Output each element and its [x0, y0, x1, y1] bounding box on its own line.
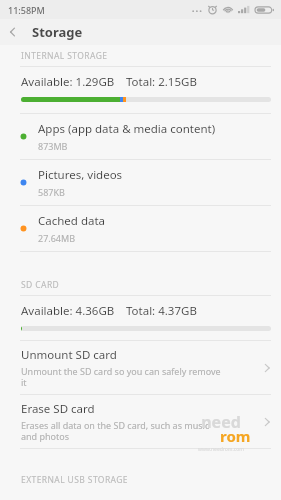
button[interactable]: Erase SD card — [0, 395, 281, 448]
button[interactable]: Pictures, videos — [0, 160, 281, 205]
staticText: Apps (app data & media content) — [38, 121, 216, 137]
staticText: Unmount SD card — [21, 347, 117, 363]
button[interactable]: Unmount SD card — [0, 341, 281, 394]
button[interactable]: Apps (app data & media content) — [0, 114, 281, 159]
staticText: www.needrom.com — [198, 446, 244, 453]
staticText: SD CARD — [21, 279, 60, 291]
staticText: Total: 2.15GB — [126, 74, 197, 90]
staticText: Available: 1.29GB — [21, 74, 115, 90]
staticText: Total: 4.37GB — [126, 303, 197, 319]
staticText: 11:58PM — [8, 4, 45, 16]
staticText: 873MB — [38, 140, 68, 152]
staticText: Erase SD card — [21, 401, 95, 417]
staticText: 27.64MB — [38, 232, 76, 244]
staticText: need — [201, 411, 241, 433]
button[interactable]: Cached data — [0, 206, 281, 251]
staticText: Cached data — [38, 213, 106, 229]
button[interactable]: Back — [0, 19, 26, 45]
staticText: Pictures, videos — [38, 167, 123, 183]
staticText: INTERNAL STORAGE — [21, 50, 108, 62]
staticText: Available: 4.36GB — [21, 303, 115, 319]
staticText: rom — [220, 426, 251, 446]
staticText: Storage — [32, 23, 83, 41]
staticText: 587KB — [38, 186, 65, 198]
staticText: EXTERNAL USB STORAGE — [21, 474, 128, 486]
staticText: Erases all data on the SD card, such as … — [21, 419, 210, 443]
staticText: Unmount the SD card so you can safely re… — [21, 365, 221, 389]
